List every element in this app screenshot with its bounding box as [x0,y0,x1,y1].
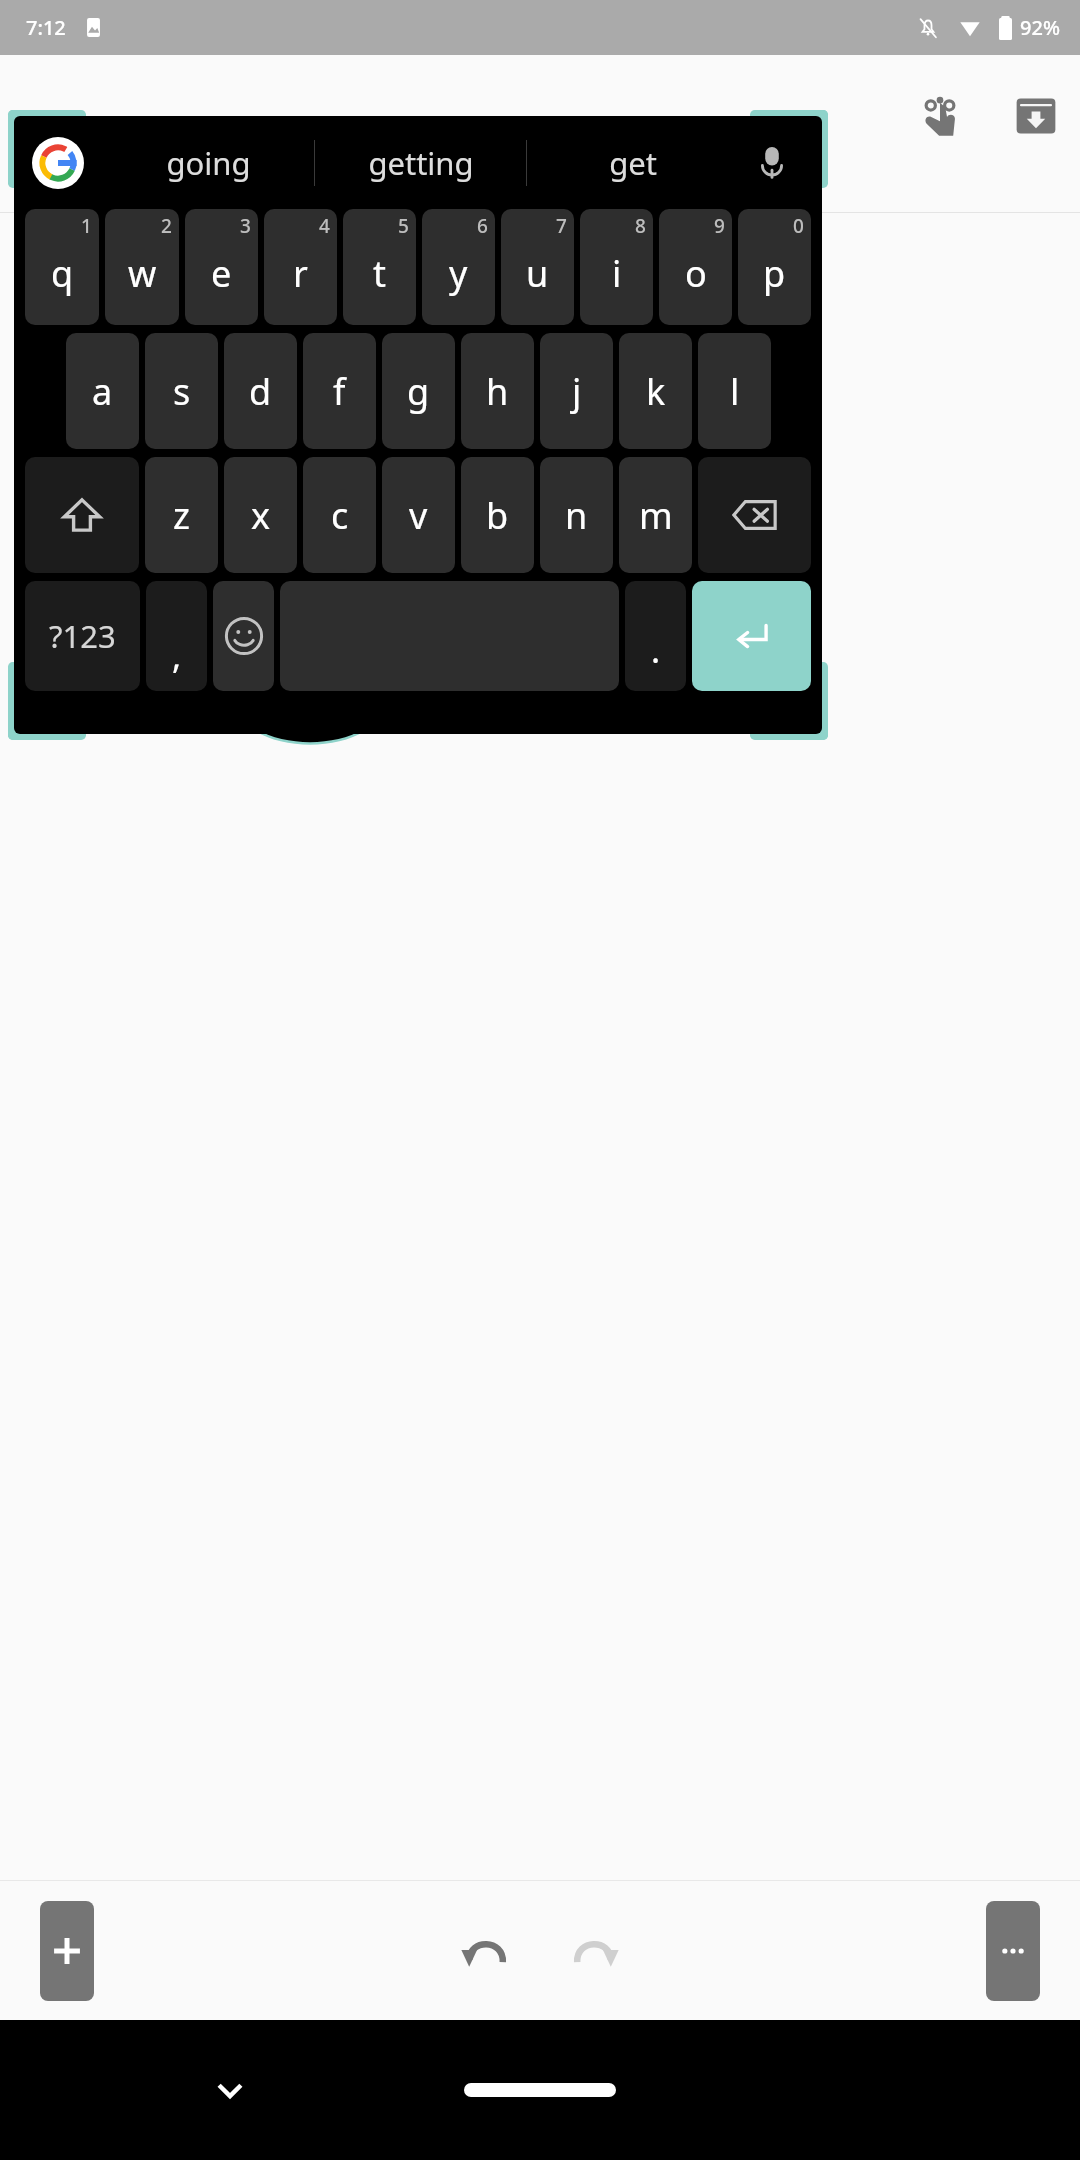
staticText: 4 [319,213,330,239]
staticText: 6 [477,213,488,239]
button[interactable]: . [625,581,686,691]
button[interactable]: 8 [580,209,653,325]
staticText: 9 [714,213,725,239]
staticText: going [166,142,251,184]
staticText: 92% [1020,14,1060,41]
button[interactable]: s [145,333,218,449]
button[interactable]: Undo [442,1907,530,1995]
staticText: 7:12 [26,14,66,41]
staticText: . [651,627,661,673]
button[interactable]: Backspace [698,457,811,573]
button[interactable]: Google [30,135,86,191]
button[interactable]: Enter [692,581,811,691]
button[interactable]: 2 [105,209,179,325]
button[interactable]: b [461,457,534,573]
staticText: e [211,249,232,298]
button[interactable]: f [303,333,376,449]
button[interactable]: h [461,333,534,449]
button[interactable]: d [224,333,297,449]
staticText: 3 [240,213,251,239]
button[interactable]: Add [40,1901,94,2001]
staticText: k [646,367,666,416]
button[interactable]: j [540,333,613,449]
button[interactable]: , [146,581,207,691]
staticText: x [251,491,271,540]
staticText: b [486,491,509,540]
staticText: u [526,249,549,298]
button[interactable]: g [382,333,455,449]
staticText: getting [368,142,474,184]
button[interactable]: 7 [501,209,574,325]
staticText: 8 [635,213,646,239]
button[interactable]: a [66,333,139,449]
staticText: 5 [398,213,409,239]
staticText: a [92,367,113,416]
staticText: i [612,249,622,298]
button[interactable]: k [619,333,692,449]
staticText: 1 [81,213,92,239]
staticText: g [407,367,430,416]
button[interactable]: ?123 [25,581,140,691]
button[interactable]: z [145,457,218,573]
button[interactable]: 3 [185,209,258,325]
staticText: d [249,367,272,416]
button[interactable]: going [102,116,314,209]
staticText: 2 [161,213,172,239]
button[interactable]: getting [315,116,526,209]
staticText: get [609,142,657,184]
button[interactable]: 9 [659,209,732,325]
staticText: , [172,633,182,679]
staticText: p [763,249,786,298]
button[interactable]: Touch gesture [908,84,972,148]
button[interactable]: 6 [422,209,495,325]
button[interactable]: l [698,333,771,449]
staticText: y [449,249,468,298]
button[interactable]: Emoji [213,581,274,691]
staticText: w [128,249,157,298]
button[interactable]: n [540,457,613,573]
button[interactable]: c [303,457,376,573]
button[interactable]: Hide keyboard [190,2050,270,2130]
button[interactable]: Shift [25,457,139,573]
staticText: v [409,491,428,540]
button[interactable]: Home [464,2083,616,2097]
staticText: 7 [556,213,567,239]
button[interactable]: get [527,116,738,209]
button[interactable]: 0 [738,209,811,325]
staticText: h [486,367,509,416]
button[interactable]: More options [986,1901,1040,2001]
staticText: t [373,249,386,298]
staticText: o [685,249,707,298]
button[interactable]: 4 [264,209,337,325]
staticText: ?123 [49,615,116,657]
staticText: s [173,367,191,416]
button[interactable]: 5 [343,209,416,325]
button[interactable]: 1 [25,209,99,325]
button[interactable]: Voice input [744,135,800,191]
staticText: n [565,491,588,540]
staticText: f [333,367,346,416]
button[interactable]: m [619,457,692,573]
staticText: q [51,249,74,298]
staticText: m [639,491,673,540]
staticText: z [173,491,190,540]
button[interactable]: Archive [1004,84,1068,148]
button[interactable]: Redo [550,1907,638,1995]
staticText: r [293,249,308,298]
staticText: c [331,491,349,540]
staticText: l [730,367,740,416]
button[interactable]: x [224,457,297,573]
staticText: j [572,367,582,416]
staticText: 0 [793,213,804,239]
button[interactable]: v [382,457,455,573]
